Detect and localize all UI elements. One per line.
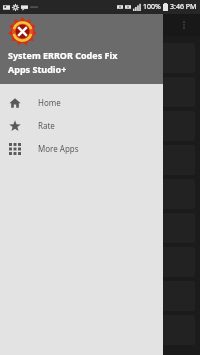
staticText: More Apps	[38, 143, 79, 154]
staticText: 3:46 PM	[170, 2, 197, 12]
button[interactable]	[5, 281, 195, 311]
staticText: 100%	[143, 2, 161, 12]
button[interactable]: More options	[176, 17, 192, 33]
staticText: Rate	[38, 120, 55, 131]
button[interactable]	[5, 179, 195, 209]
button[interactable]: More Apps	[0, 137, 163, 160]
button[interactable]	[5, 77, 195, 107]
staticText: Apps Studio+	[8, 63, 67, 75]
button[interactable]	[5, 43, 195, 73]
staticText: System ERROR Codes Fix	[8, 49, 118, 61]
button[interactable]: Rate	[0, 114, 163, 137]
staticText: Home	[38, 97, 61, 108]
button[interactable]	[5, 213, 195, 243]
button[interactable]	[5, 111, 195, 141]
button[interactable]: Home	[0, 91, 163, 114]
button[interactable]	[5, 315, 195, 345]
button[interactable]	[5, 145, 195, 175]
button[interactable]	[5, 247, 195, 277]
